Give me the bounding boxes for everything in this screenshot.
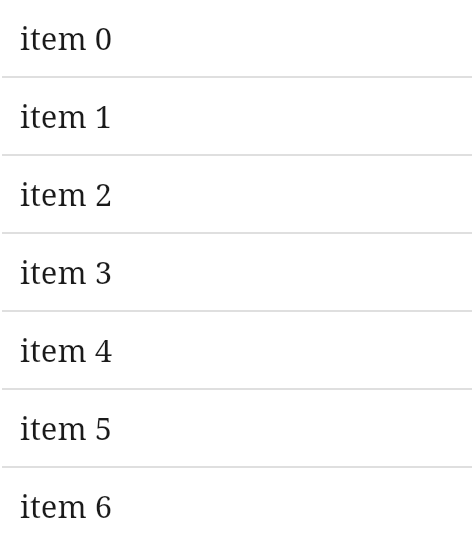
staticText: item 5 xyxy=(20,407,113,449)
staticText: item 0 xyxy=(20,17,113,59)
staticText: item 6 xyxy=(20,485,113,527)
staticText: item 3 xyxy=(20,251,113,293)
staticText: item 2 xyxy=(20,173,113,215)
button[interactable]: item 2 xyxy=(0,156,474,232)
button[interactable]: item 6 xyxy=(0,468,474,544)
button[interactable]: item 3 xyxy=(0,234,474,310)
button[interactable]: item 4 xyxy=(0,312,474,388)
staticText: item 1 xyxy=(20,95,113,137)
staticText: item 4 xyxy=(20,329,113,371)
button[interactable]: item 0 xyxy=(0,0,474,76)
button[interactable]: item 5 xyxy=(0,390,474,466)
button[interactable]: item 1 xyxy=(0,78,474,154)
